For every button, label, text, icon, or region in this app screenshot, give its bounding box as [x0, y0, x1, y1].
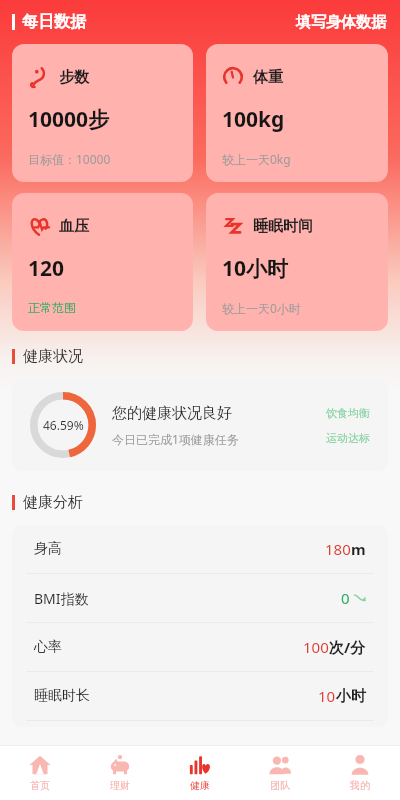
- staticText: 您的健康状况良好: [112, 404, 232, 423]
- staticText: 120: [28, 254, 65, 283]
- staticText: 理财: [110, 779, 130, 792]
- other: 团队: [269, 754, 291, 776]
- staticText: m: [351, 539, 366, 559]
- staticText: 我的: [350, 779, 370, 792]
- button[interactable]: 血压: [12, 193, 193, 331]
- button[interactable]: 填写身体数据: [294, 9, 388, 36]
- staticText: 10小时: [222, 254, 289, 283]
- button[interactable]: 46.59%: [12, 379, 388, 471]
- staticText: 睡眠时长: [34, 687, 90, 705]
- staticText: 身高: [34, 540, 62, 558]
- other: 我的: [349, 754, 371, 776]
- other: 首页: [29, 754, 51, 776]
- staticText: 饮食均衡: [326, 406, 370, 420]
- button[interactable]: 心率: [12, 623, 388, 671]
- staticText: 首页: [30, 779, 50, 792]
- staticText: 团队: [270, 779, 290, 792]
- staticText: 46.59%: [43, 417, 84, 433]
- button[interactable]: 身高: [12, 525, 388, 573]
- staticText: 血压: [59, 217, 89, 236]
- button[interactable]: 团队: [240, 746, 320, 800]
- button[interactable]: BMI指数: [12, 574, 388, 622]
- staticText: 小时: [336, 687, 366, 706]
- staticText: 180: [325, 539, 351, 559]
- staticText: BMI指数: [34, 589, 89, 608]
- staticText: 10: [318, 686, 336, 706]
- button[interactable]: 首页: [0, 746, 80, 800]
- staticText: 体重: [253, 68, 283, 87]
- button[interactable]: 健康: [160, 746, 240, 800]
- staticText: 次/分: [329, 637, 366, 657]
- button[interactable]: 睡眠时长: [12, 672, 388, 720]
- staticText: 100kg: [222, 105, 285, 134]
- staticText: 运动达标: [326, 431, 370, 445]
- button[interactable]: 体重: [206, 44, 388, 182]
- staticText: 正常范围: [28, 300, 76, 315]
- button[interactable]: 理财: [80, 746, 160, 800]
- staticText: 今日已完成1项健康任务: [112, 431, 239, 447]
- staticText: 较上一天0kg: [222, 151, 291, 167]
- other: 健康: [189, 754, 211, 776]
- other: 理财: [109, 754, 131, 776]
- staticText: 10000步: [28, 105, 110, 134]
- staticText: 健康分析: [23, 493, 83, 512]
- button[interactable]: 我的: [320, 746, 400, 800]
- button[interactable]: 睡眠时间: [206, 193, 388, 331]
- staticText: 健康状况: [23, 347, 83, 366]
- staticText: 100: [303, 637, 329, 657]
- staticText: 每日数据: [22, 12, 86, 32]
- button[interactable]: 步数: [12, 44, 193, 182]
- staticText: 健康: [190, 779, 210, 792]
- staticText: 目标值：10000: [28, 151, 111, 167]
- staticText: 心率: [34, 638, 62, 656]
- staticText: 填写身体数据: [296, 13, 386, 32]
- staticText: 0: [341, 588, 350, 608]
- staticText: 较上一天0小时: [222, 300, 301, 316]
- staticText: 睡眠时间: [253, 217, 313, 236]
- staticText: 步数: [59, 68, 89, 87]
